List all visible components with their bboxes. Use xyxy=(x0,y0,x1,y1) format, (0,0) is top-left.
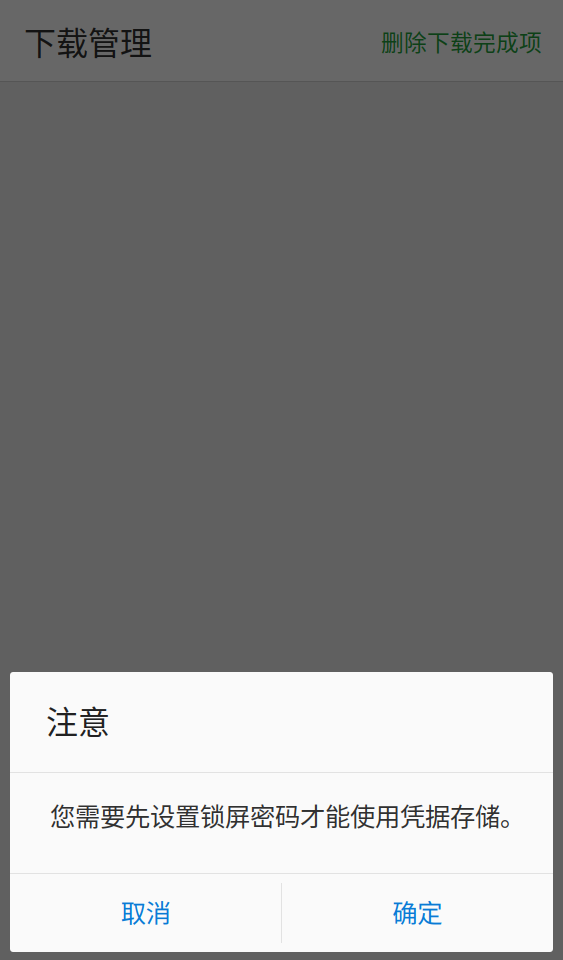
button[interactable]: 确定 xyxy=(281,874,553,952)
staticText: 确定 xyxy=(392,893,442,930)
staticText: 下载管理 xyxy=(24,18,152,64)
button[interactable]: 删除下载完成项 xyxy=(375,15,548,67)
staticText: 注意 xyxy=(46,697,110,743)
staticText: 删除下载完成项 xyxy=(381,25,542,57)
staticText: 您需要先设置锁屏密码才能使用凭据存储。 xyxy=(50,797,525,833)
staticText: 取消 xyxy=(121,893,171,930)
button[interactable]: 取消 xyxy=(10,874,281,952)
